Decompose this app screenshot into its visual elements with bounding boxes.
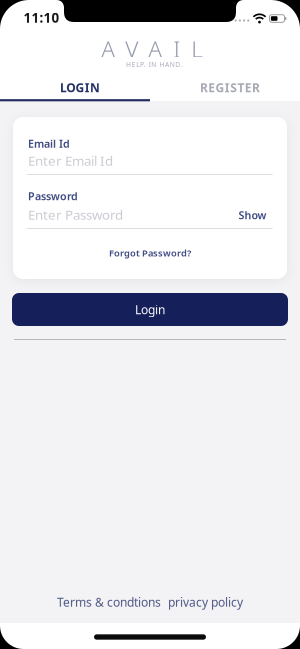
staticText: Show [238, 208, 266, 222]
staticText: REGISTER [200, 79, 260, 95]
staticText: 11:10 [23, 9, 59, 26]
staticText: Enter Password [28, 206, 123, 223]
button[interactable]: Login [12, 293, 288, 326]
staticText: privacy policy [168, 594, 243, 610]
staticText: Login [135, 301, 165, 317]
button[interactable]: Forgot Password? [101, 243, 199, 263]
staticText: LOGIN [60, 79, 100, 95]
staticText: Enter Email Id [28, 152, 113, 169]
staticText: AVAIL [101, 34, 203, 64]
staticText: Forgot Password? [109, 247, 191, 259]
button[interactable]: REGISTER [155, 75, 300, 99]
button[interactable]: Show [238, 208, 266, 222]
staticText: HELP. IN HAND. [126, 60, 183, 69]
button[interactable]: privacy policy [168, 594, 243, 610]
staticText: Email Id [28, 136, 70, 151]
button[interactable]: LOGIN [5, 75, 155, 99]
staticText: Password [28, 189, 78, 203]
button[interactable]: Terms & condtions [57, 594, 161, 610]
staticText: Terms & condtions [57, 594, 161, 610]
